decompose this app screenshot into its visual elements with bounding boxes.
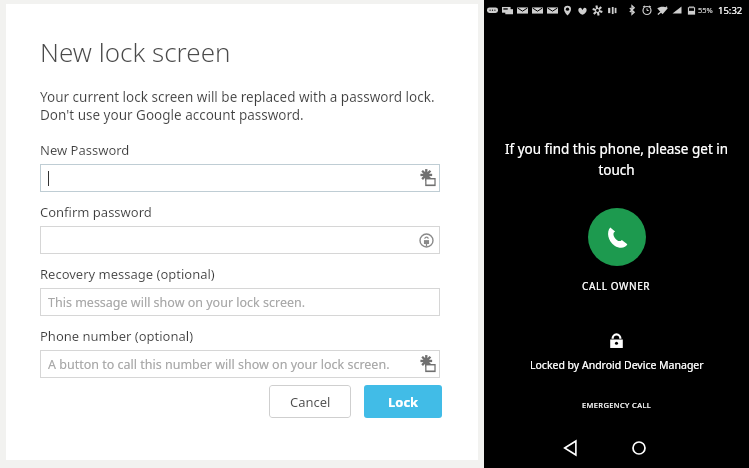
button[interactable]: Lock [364,385,442,418]
staticText: Cancel [290,393,331,411]
staticText: 55% [698,5,713,15]
button[interactable]: This message will show on your lock scre… [40,288,440,316]
staticText: Confirm password [40,203,152,221]
staticText: Your current lock screen will be replace… [40,88,435,124]
staticText: Phone number (optional) [40,327,194,345]
staticText: New Password [40,141,130,159]
staticText: A button to call this number will show o… [48,356,390,373]
staticText: This message will show on your lock scre… [48,294,306,311]
staticText: If you find this phone, please get in to… [502,140,731,179]
staticText: Lock [388,393,419,411]
other: Password manager [418,169,436,187]
other: Saved password [419,233,434,248]
staticText: EMERGENCY CALL [582,400,652,410]
button[interactable]: Saved password [40,226,440,254]
button[interactable]: Back [555,433,585,463]
staticText: 15:32 [718,4,743,17]
button[interactable]: Call owner [588,208,646,266]
staticText: Locked by Android Device Manager [530,358,704,372]
staticText: New lock screen [40,34,231,69]
other: Password manager [418,355,436,373]
button[interactable]: A button to call this number will show o… [40,350,440,378]
staticText: CALL OWNER [582,279,651,293]
button[interactable]: Cancel [269,385,351,418]
staticText: Recovery message (optional) [40,265,215,283]
button[interactable]: EMERGENCY CALL [570,396,664,414]
button[interactable]: Home [624,433,654,463]
button[interactable]: Password manager [40,164,440,192]
